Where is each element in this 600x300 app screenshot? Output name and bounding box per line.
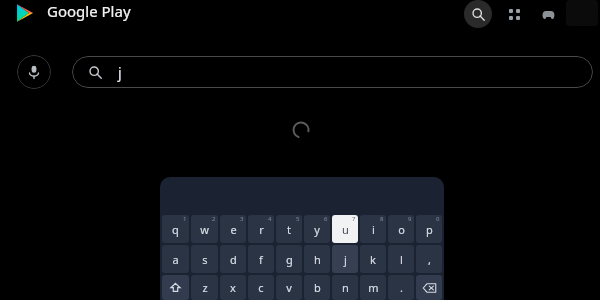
button[interactable]: j xyxy=(72,56,593,88)
staticText: 0 xyxy=(436,215,440,223)
button[interactable]: a xyxy=(162,245,189,273)
staticText: s xyxy=(202,252,208,267)
staticText: Google Play xyxy=(47,1,131,21)
button[interactable]: y xyxy=(304,215,330,243)
staticText: y xyxy=(314,222,320,237)
button[interactable]: e xyxy=(220,215,246,243)
button[interactable]: , xyxy=(416,245,442,273)
button[interactable]: u xyxy=(332,215,358,243)
staticText: 9 xyxy=(408,215,412,223)
staticText: i xyxy=(372,222,375,237)
staticText: k xyxy=(370,252,376,267)
button[interactable]: h xyxy=(304,245,330,273)
button[interactable]: o xyxy=(388,215,414,243)
staticText: j xyxy=(118,63,122,82)
button[interactable]: Games xyxy=(534,0,562,28)
staticText: 3 xyxy=(240,215,244,223)
staticText: v xyxy=(286,280,292,295)
other: Google Play xyxy=(16,4,34,22)
button[interactable]: c xyxy=(248,275,274,300)
staticText: u xyxy=(342,222,349,237)
button[interactable]: j xyxy=(332,245,358,273)
staticText: f xyxy=(259,252,263,267)
staticText: 1 xyxy=(183,215,187,223)
button[interactable]: f xyxy=(248,245,274,273)
staticText: n xyxy=(342,280,349,295)
staticText: r xyxy=(259,222,264,237)
staticText: t xyxy=(287,222,291,237)
staticText: p xyxy=(426,222,433,237)
button[interactable]: Backspace xyxy=(416,275,442,300)
button[interactable]: r xyxy=(248,215,274,243)
staticText: e xyxy=(230,222,237,237)
button[interactable]: x xyxy=(220,275,246,300)
staticText: h xyxy=(314,252,321,267)
staticText: 7 xyxy=(352,215,356,223)
staticText: w xyxy=(200,222,209,237)
staticText: 8 xyxy=(380,215,384,223)
staticText: z xyxy=(202,280,208,295)
button[interactable]: Shift xyxy=(162,275,189,300)
button[interactable]: m xyxy=(360,275,386,300)
staticText: 5 xyxy=(296,215,300,223)
button[interactable]: . xyxy=(388,275,414,300)
button[interactable]: k xyxy=(360,245,386,273)
button[interactable]: Apps xyxy=(500,0,528,28)
button[interactable]: z xyxy=(191,275,218,300)
staticText: . xyxy=(400,280,403,295)
staticText: c xyxy=(258,280,264,295)
button[interactable]: g xyxy=(276,245,302,273)
button[interactable]: l xyxy=(388,245,414,273)
staticText: o xyxy=(398,222,405,237)
staticText: 4 xyxy=(268,215,272,223)
button[interactable]: d xyxy=(220,245,246,273)
staticText: g xyxy=(286,252,293,267)
button[interactable]: v xyxy=(276,275,302,300)
staticText: , xyxy=(428,252,431,267)
staticText: m xyxy=(368,280,379,295)
button[interactable]: i xyxy=(360,215,386,243)
button[interactable]: p xyxy=(416,215,442,243)
staticText: 2 xyxy=(212,215,216,223)
button[interactable]: s xyxy=(191,245,218,273)
button[interactable]: Voice search xyxy=(17,55,51,89)
button[interactable]: Search xyxy=(464,0,492,28)
staticText: q xyxy=(172,222,179,237)
button[interactable]: b xyxy=(304,275,330,300)
staticText: l xyxy=(400,252,403,267)
staticText: a xyxy=(172,252,179,267)
staticText: d xyxy=(230,252,237,267)
button[interactable]: q xyxy=(162,215,189,243)
staticText: b xyxy=(314,280,321,295)
button[interactable]: n xyxy=(332,275,358,300)
staticText: j xyxy=(344,252,347,267)
staticText: 6 xyxy=(324,215,328,223)
button[interactable]: t xyxy=(276,215,302,243)
staticText: x xyxy=(230,280,236,295)
button[interactable]: w xyxy=(191,215,218,243)
